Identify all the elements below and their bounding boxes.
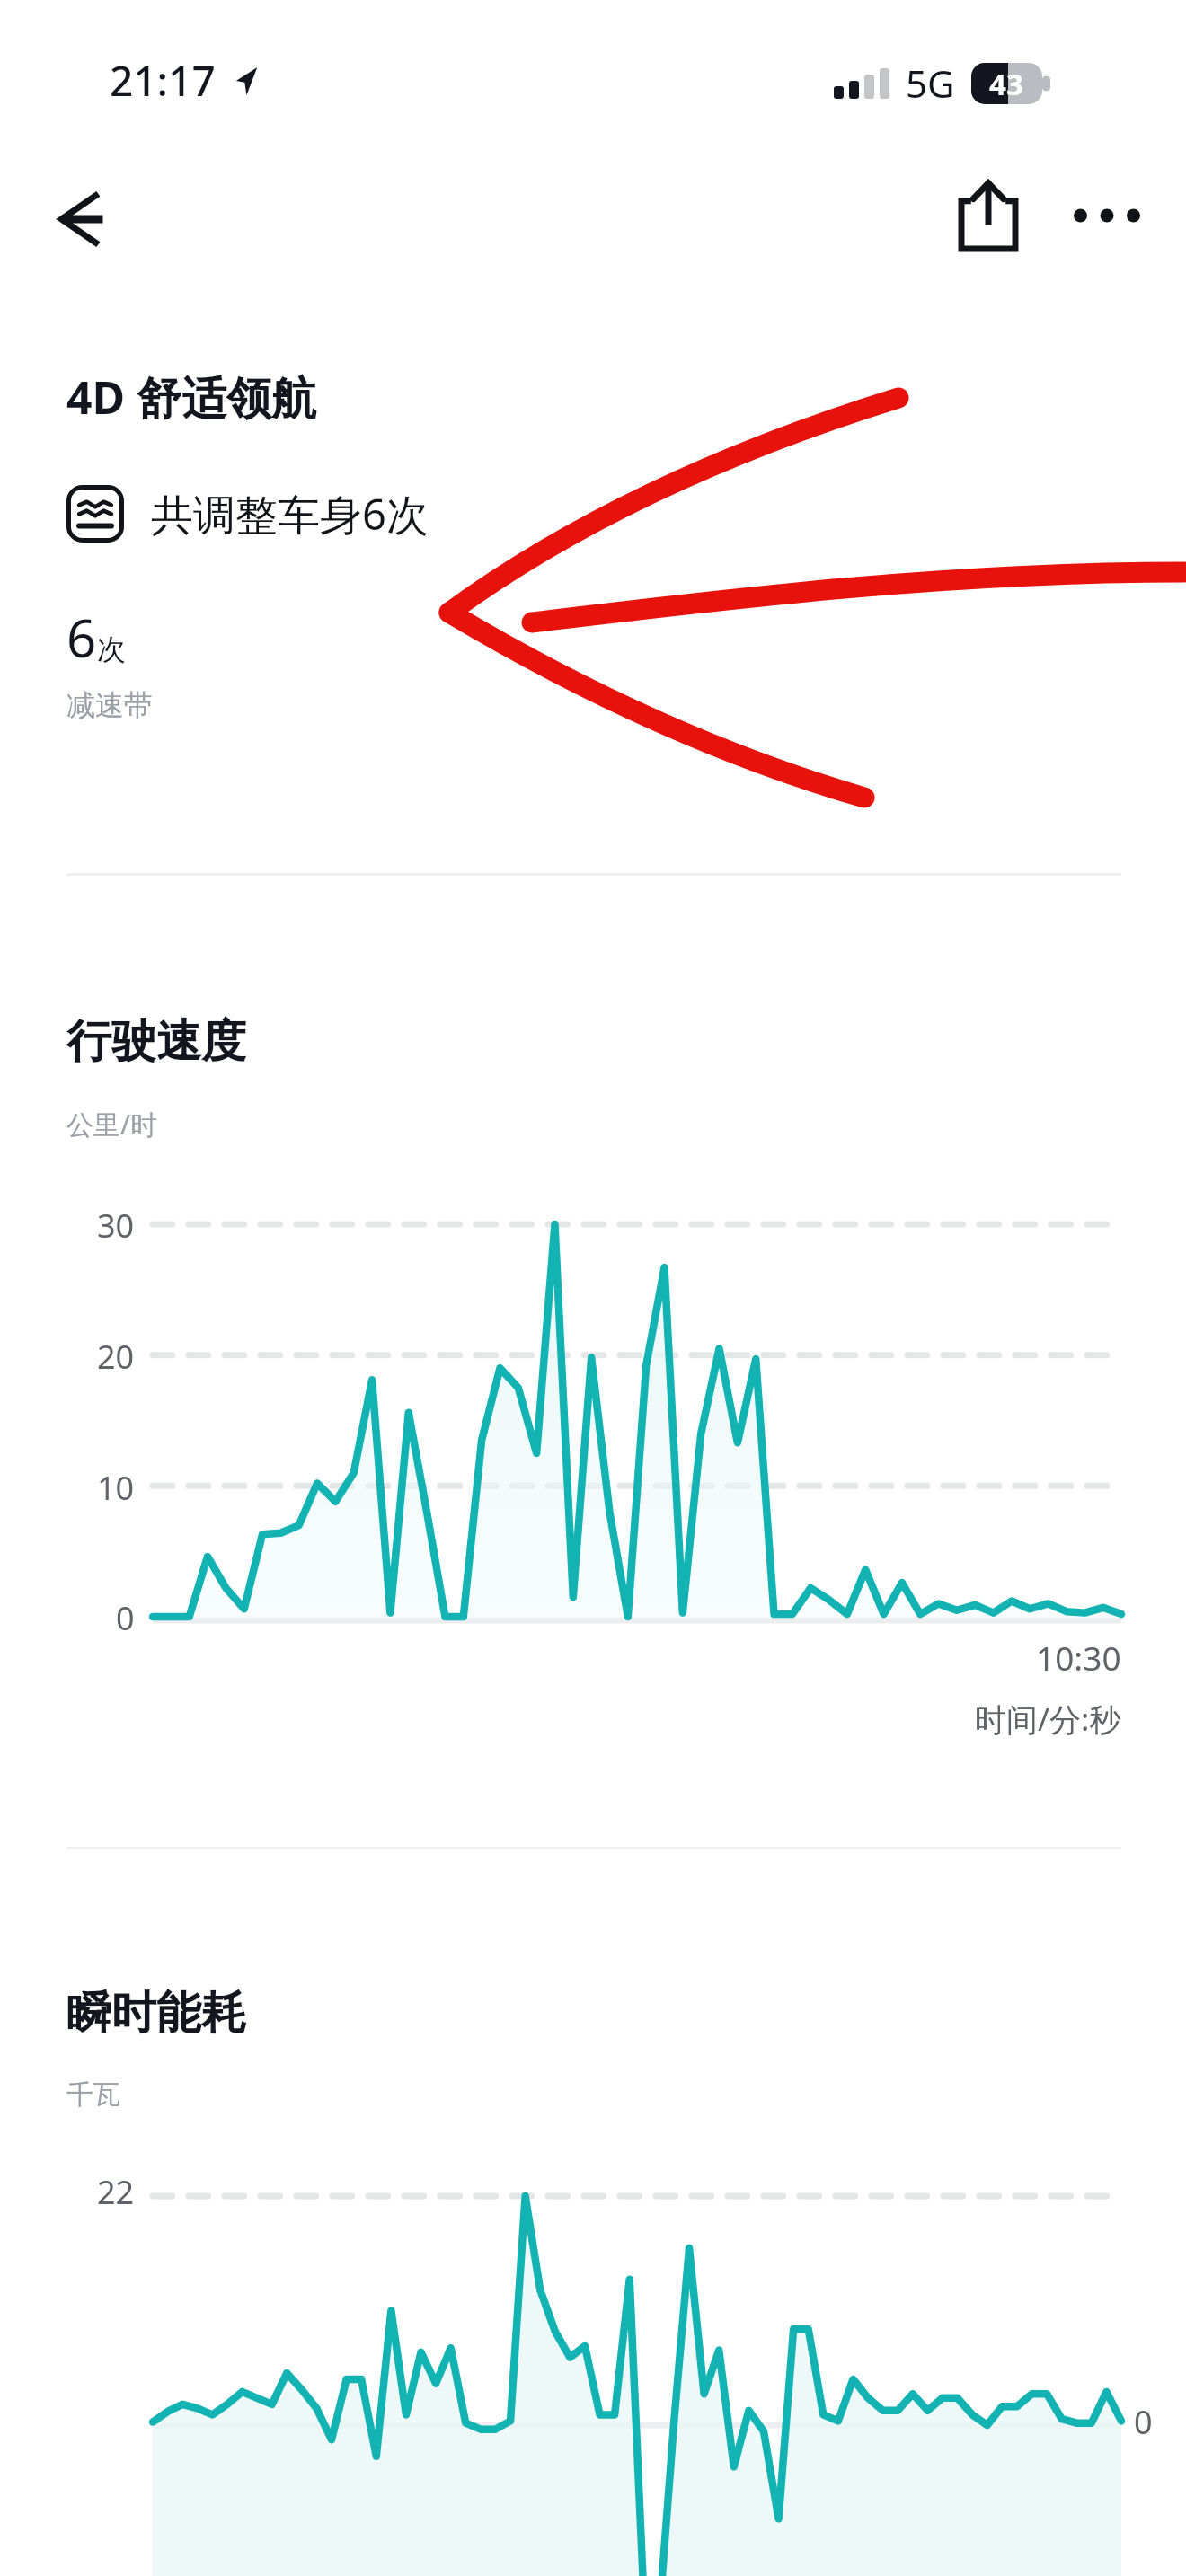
staticText: 43 [989, 64, 1023, 104]
staticText: 减速带 [66, 687, 153, 723]
staticText: 30 [97, 1204, 135, 1248]
button[interactable]: Share [936, 162, 1040, 269]
staticText: 瞬时能耗 [66, 1985, 246, 2042]
button[interactable]: More options [1057, 162, 1157, 269]
staticText: 次 [97, 631, 126, 667]
staticText: 20 [97, 1335, 135, 1379]
staticText: 10 [97, 1466, 135, 1510]
staticText: 千瓦 [66, 2078, 120, 2112]
staticText: 0 [1134, 2400, 1153, 2444]
staticText: 4D 舒适领航 [66, 366, 317, 428]
staticText: 6 [66, 602, 97, 673]
staticText: 5G [906, 57, 955, 109]
staticText: 10:30 [1036, 1635, 1121, 1680]
staticText: 共调整车身6次 [151, 485, 429, 543]
button[interactable]: Back [32, 167, 137, 271]
staticText: 21:17 [110, 52, 216, 109]
staticText: 22 [97, 2170, 135, 2214]
staticText: 0 [116, 1596, 135, 1640]
staticText: 行驶速度 [66, 1013, 246, 1070]
staticText: 时间/分:秒 [975, 1698, 1121, 1741]
staticText: 公里/时 [66, 1106, 158, 1142]
